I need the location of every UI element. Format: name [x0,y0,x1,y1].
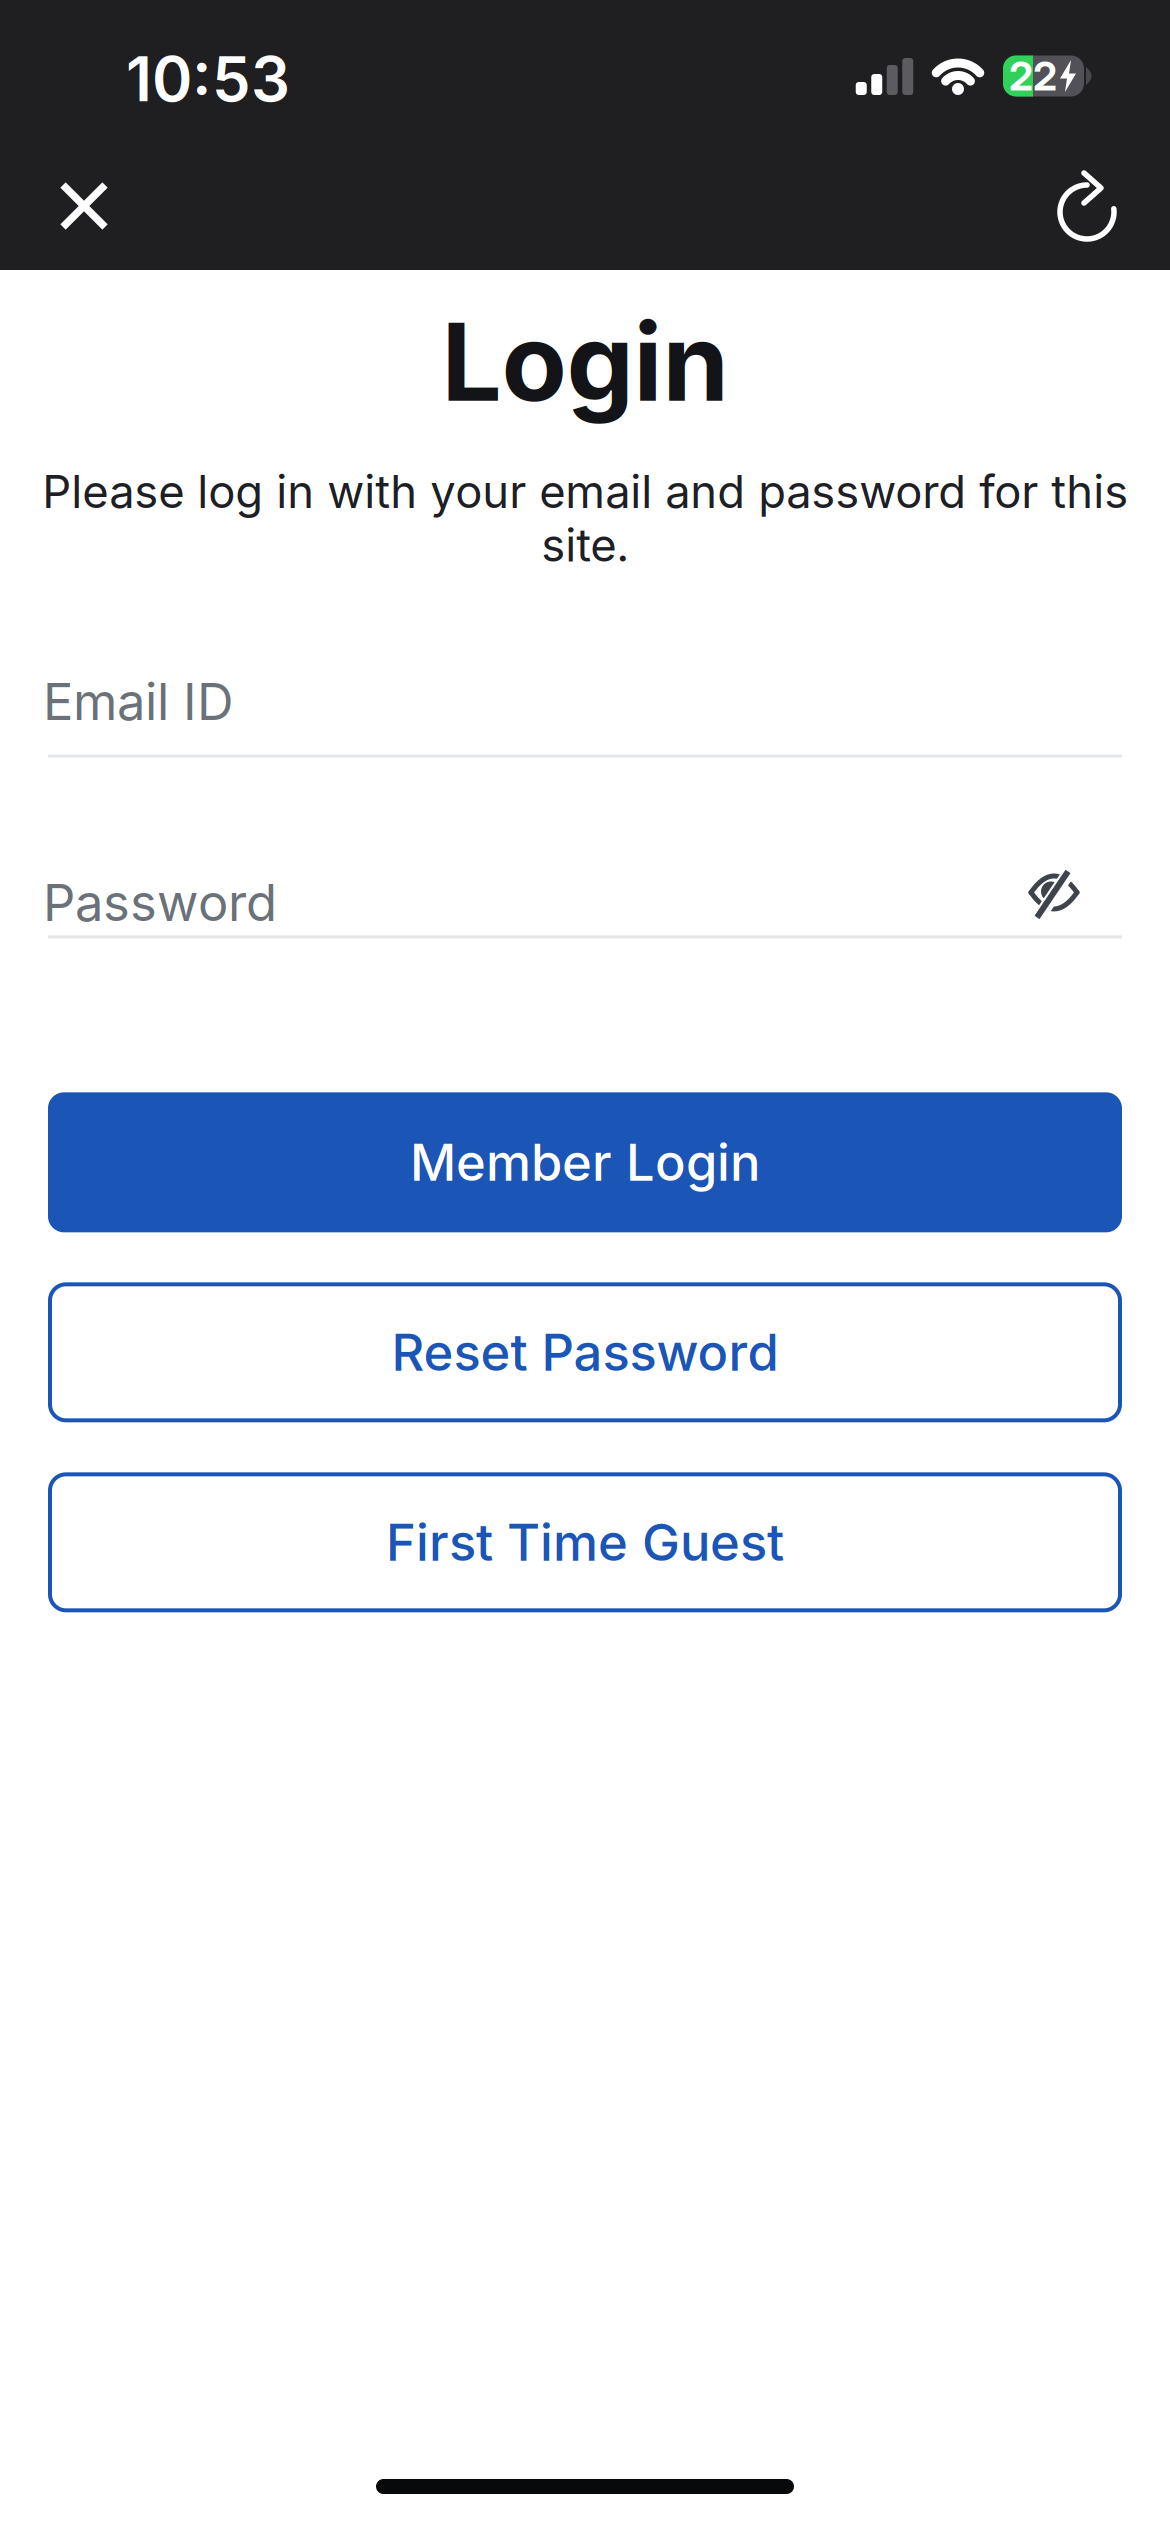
button[interactable]: Show password [1031,883,1077,921]
staticText: Login [441,299,728,425]
staticText: 10:53 [126,43,290,115]
staticText: 22 [1009,52,1057,100]
staticText: Please log in with your email and passwo… [42,465,1128,572]
button[interactable]: First Time Guest [48,1472,1122,1612]
staticText: Reset Password [391,1322,778,1382]
button[interactable]: Reload [1052,165,1122,235]
staticText: Member Login [410,1132,760,1192]
staticText: Email ID [43,672,234,732]
button[interactable]: Email ID [0,672,1170,732]
button[interactable]: Password [43,873,277,932]
button[interactable]: Member Login [48,1092,1122,1232]
button[interactable]: Close [49,165,119,235]
staticText: First Time Guest [386,1512,784,1572]
button[interactable]: Reset Password [48,1282,1122,1422]
staticText: Password [43,873,277,932]
